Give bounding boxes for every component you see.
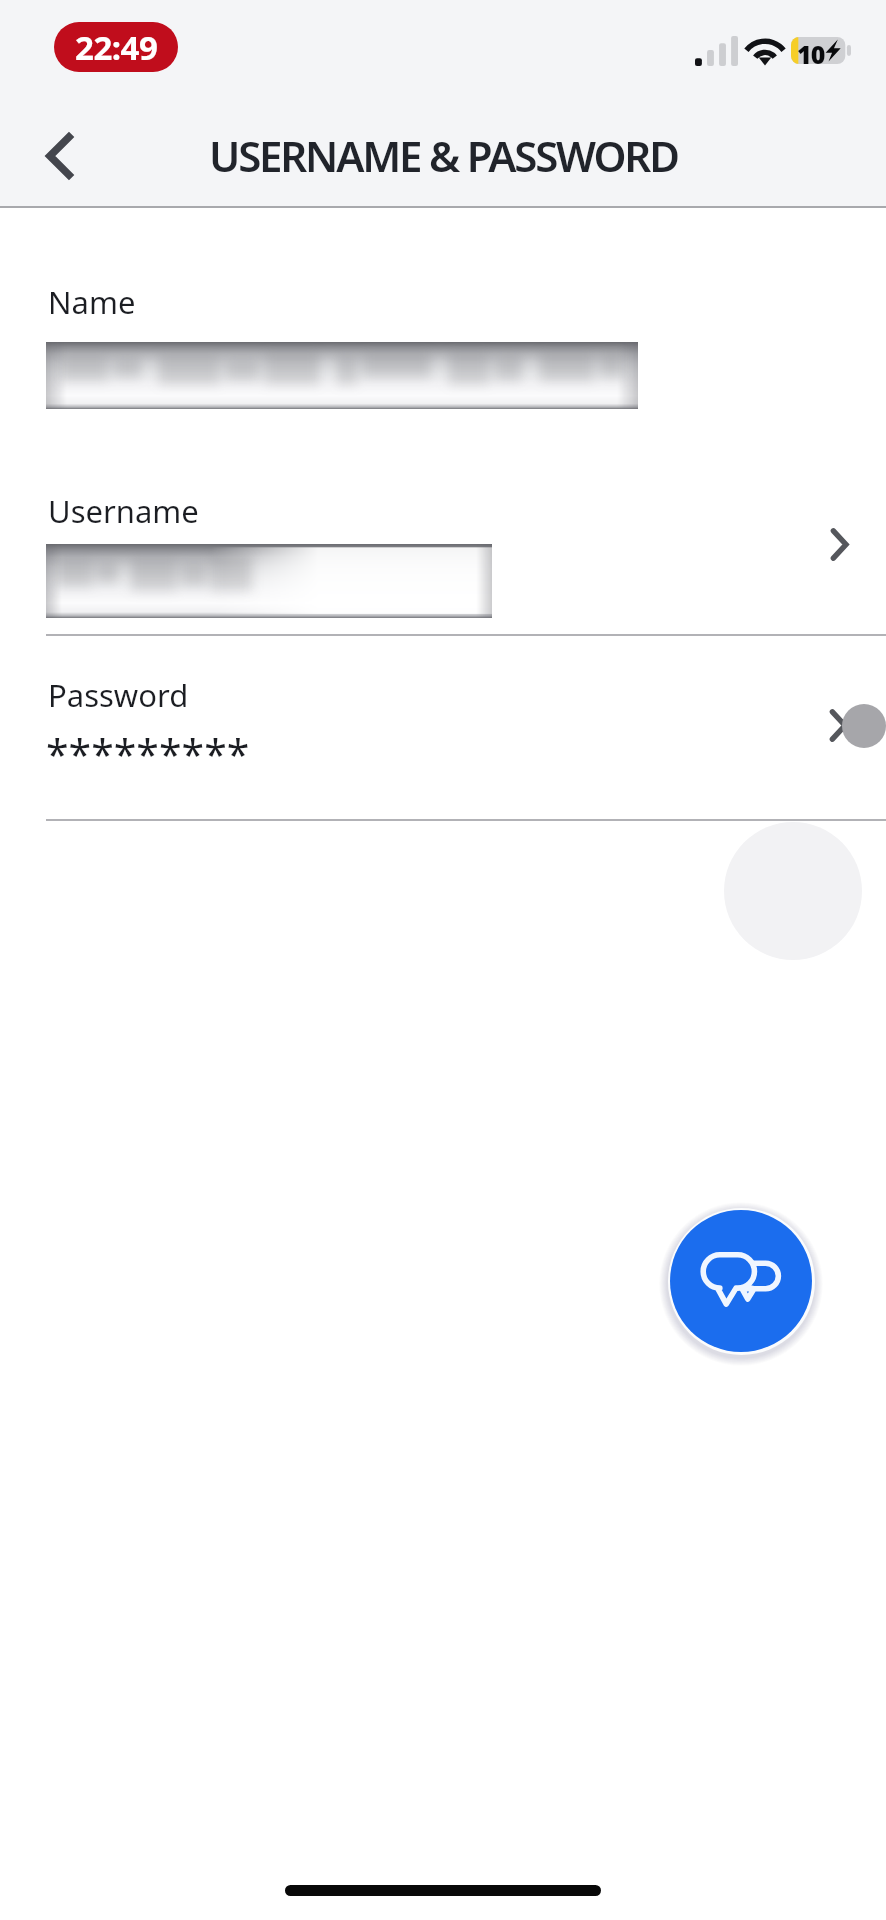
staticText: Name bbox=[48, 281, 136, 323]
staticText: ********* bbox=[46, 726, 250, 782]
staticText: 10 bbox=[797, 37, 825, 64]
button[interactable]: Username bbox=[0, 472, 886, 626]
staticText: Password bbox=[48, 674, 189, 716]
staticText: 22:49 bbox=[75, 25, 158, 70]
staticText: USERNAME & PASSWORD bbox=[209, 127, 678, 184]
button[interactable]: Back bbox=[24, 120, 96, 192]
staticText: Username bbox=[48, 490, 199, 532]
button[interactable]: Open chat bbox=[670, 1210, 812, 1352]
